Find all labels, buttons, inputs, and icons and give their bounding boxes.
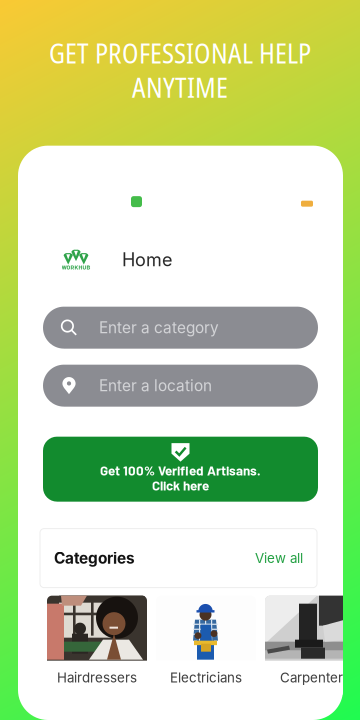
staticText: ANYTIME — [132, 69, 228, 106]
staticText: Electricians — [170, 670, 242, 686]
button[interactable]: View all — [255, 550, 303, 566]
staticText: Get 100% Verified Artisans. — [100, 462, 261, 478]
button[interactable]: Electricians — [156, 596, 256, 695]
staticText: WORKHUB — [61, 263, 90, 271]
staticText: GET PROFESSIONAL HELP — [49, 35, 311, 71]
staticText: Categories — [54, 549, 135, 567]
staticText: Enter a location — [99, 376, 212, 395]
staticText: Enter a category — [99, 318, 219, 337]
button[interactable]: Get 100% Verified Artisans. — [43, 437, 318, 502]
staticText: Carpenters — [280, 670, 350, 686]
staticText: View all — [255, 550, 303, 566]
staticText: Click here — [152, 477, 209, 493]
button[interactable]: Enter a category — [43, 307, 318, 349]
staticText: Hairdressers — [57, 670, 137, 686]
button[interactable]: Hairdressers — [47, 596, 147, 695]
button[interactable]: Carpenters — [265, 596, 360, 695]
staticText: Home — [122, 249, 172, 271]
button[interactable]: Enter a location — [43, 365, 318, 407]
